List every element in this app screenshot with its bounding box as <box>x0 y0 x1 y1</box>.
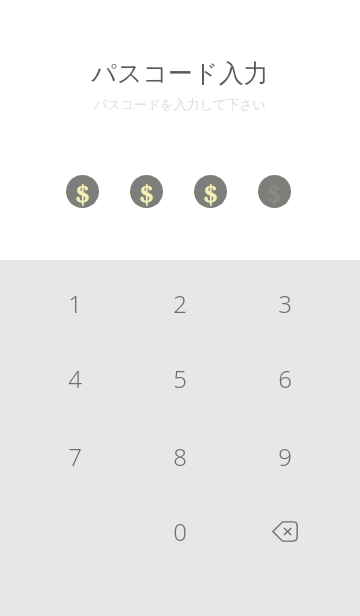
staticText: $ <box>267 175 282 208</box>
staticText: 8 <box>173 440 187 473</box>
staticText: $ <box>203 175 218 208</box>
staticText: 0 <box>173 515 187 548</box>
staticText: $ <box>139 175 154 208</box>
staticText: 1 <box>68 287 82 320</box>
button[interactable]: 8 <box>132 421 228 491</box>
button[interactable]: 6 <box>237 343 333 413</box>
button[interactable]: 9 <box>237 421 333 491</box>
staticText: 5 <box>173 362 187 395</box>
staticText: 9 <box>278 440 292 473</box>
staticText: 4 <box>68 362 82 395</box>
staticText: 6 <box>278 362 292 395</box>
button[interactable]: 5 <box>132 343 228 413</box>
button[interactable]: Delete <box>237 496 333 566</box>
staticText: 7 <box>68 440 82 473</box>
button[interactable]: 1 <box>27 268 123 338</box>
button[interactable]: 7 <box>27 421 123 491</box>
staticText: パスコード入力 <box>91 58 269 89</box>
staticText: 3 <box>278 287 292 320</box>
button[interactable]: 4 <box>27 343 123 413</box>
staticText: 2 <box>173 287 187 320</box>
staticText: $ <box>75 175 90 208</box>
button[interactable]: 0 <box>132 496 228 566</box>
button[interactable]: 3 <box>237 268 333 338</box>
button[interactable]: 2 <box>132 268 228 338</box>
staticText: パスコードを入力して下さい <box>94 96 266 112</box>
